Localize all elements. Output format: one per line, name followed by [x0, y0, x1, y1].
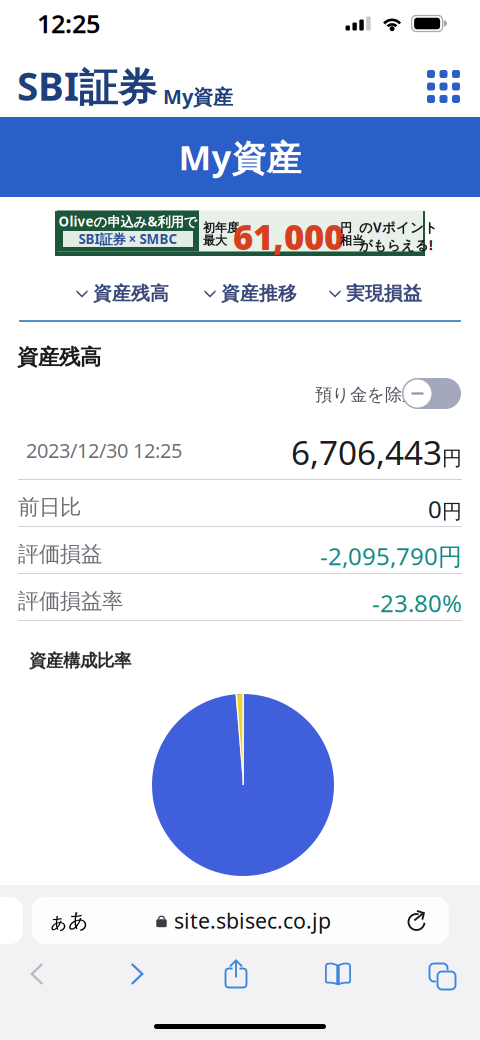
staticText: My資産 — [163, 83, 233, 110]
button[interactable]: Back — [0, 951, 74, 997]
staticText: ぁあ — [48, 908, 88, 933]
staticText: 資産残高 — [17, 344, 101, 370]
staticText: 資産推移 — [221, 282, 297, 305]
staticText: -2,095,790円 — [320, 540, 462, 572]
button[interactable]: 預り金を除外 — [301, 377, 461, 410]
staticText: 預り金を除外 — [315, 384, 419, 405]
button[interactable]: 資産推移 — [200, 277, 301, 310]
staticText: 評価損益率 — [18, 588, 123, 614]
staticText: site.sbisec.co.jp — [174, 906, 331, 935]
button[interactable]: Share — [199, 951, 273, 997]
staticText: 0 — [428, 493, 442, 525]
staticText: 評価損益 — [18, 541, 102, 567]
button[interactable]: Forward — [100, 951, 174, 997]
staticText: 61,000 — [233, 213, 344, 259]
button[interactable]: 資産残高 — [72, 277, 173, 310]
staticText: 最大 — [203, 233, 227, 248]
staticText: のVポイント — [359, 218, 438, 236]
staticText: 2023/12/30 12:25 — [26, 437, 182, 464]
staticText: -23.80% — [372, 587, 462, 619]
staticText: 実現損益 — [346, 282, 422, 305]
staticText: 12:25 — [37, 7, 100, 40]
staticText: 前日比 — [18, 494, 81, 520]
staticText: 資産構成比率 — [29, 650, 131, 671]
staticText: Oliveの申込み&利用で — [58, 213, 197, 230]
button[interactable]: ぁあ — [32, 897, 449, 944]
staticText: SBI証券 — [17, 60, 157, 111]
button[interactable]: Menu — [0, 47, 47, 94]
staticText: 資産残高 — [93, 282, 169, 305]
staticText: がもらえる! — [359, 236, 433, 254]
staticText: SBI証券 × SMBC — [78, 230, 177, 248]
button[interactable]: 実現損益 — [325, 277, 426, 310]
staticText: 円 — [442, 499, 462, 524]
staticText: My資産 — [178, 134, 301, 180]
staticText: 6,706,443 — [291, 430, 442, 474]
staticText: 初年度 — [203, 220, 239, 235]
button[interactable]: Tabs — [403, 951, 477, 997]
staticText: 円 — [442, 446, 462, 471]
staticText: 相当 — [340, 233, 364, 248]
button[interactable]: Bookmarks — [301, 951, 375, 997]
staticText: 円 — [340, 220, 352, 235]
